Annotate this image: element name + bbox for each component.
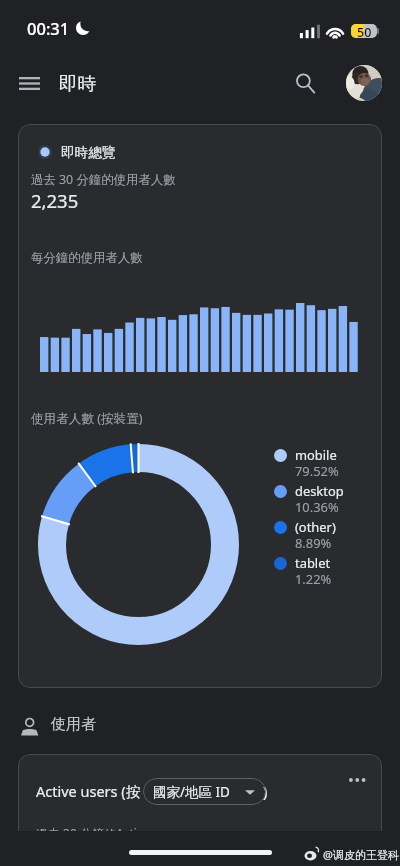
staticText: 過去 30 分鐘的使用者人數: [31, 171, 176, 188]
staticText: 即時: [59, 72, 96, 95]
staticText: 過去 30 分鐘的Active users: [36, 825, 184, 841]
staticText: desktop: [295, 482, 344, 500]
button[interactable]: Menu: [8, 62, 50, 104]
staticText: 79.52%: [295, 462, 339, 480]
staticText: 國家/地區 ID: [153, 783, 230, 801]
button[interactable]: Account: [346, 65, 382, 101]
staticText: 每分鐘的使用者人數: [31, 250, 143, 266]
staticText: @调皮的王登科: [323, 847, 399, 862]
button[interactable]: More options: [341, 764, 373, 796]
staticText: 50: [357, 24, 372, 38]
staticText: 10.36%: [295, 498, 339, 516]
staticText: 8.89%: [295, 534, 332, 552]
staticText: Active users (按: [36, 781, 141, 801]
staticText: 2,235: [31, 188, 79, 213]
staticText: 使用者人數 (按裝置): [31, 410, 143, 427]
staticText: (other): [295, 518, 336, 536]
button[interactable]: Active users (按: [18, 754, 382, 866]
staticText: tablet: [295, 554, 331, 572]
staticText: 即時總覽: [61, 144, 116, 161]
staticText: mobile: [295, 446, 337, 464]
staticText: ): [263, 781, 268, 801]
button[interactable]: 即時總覽: [18, 124, 382, 688]
staticText: 00:31: [27, 17, 70, 39]
staticText: 使用者: [51, 715, 96, 734]
staticText: 1.22%: [295, 570, 332, 588]
button[interactable]: Search: [284, 62, 326, 104]
button[interactable]: 國家/地區 ID: [143, 778, 266, 805]
